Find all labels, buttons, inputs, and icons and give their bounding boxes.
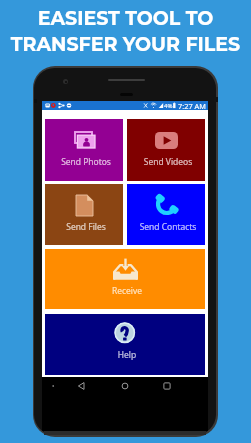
- staticText: Send Contacts: [129, 221, 207, 233]
- staticText: 7:27 AM: [178, 101, 206, 110]
- staticText: TRANSFER YOUR FILES: [0, 33, 251, 56]
- button[interactable]: Send Photos: [45, 119, 123, 181]
- button[interactable]: Receive: [45, 249, 205, 309]
- button[interactable]: Recent apps: [160, 379, 174, 393]
- staticText: EASIEST TOOL TO: [0, 7, 251, 30]
- staticText: Send Videos: [129, 156, 207, 168]
- button[interactable]: Send Contacts: [127, 184, 205, 245]
- button[interactable]: Send Files: [45, 184, 123, 245]
- staticText: Send Photos: [47, 156, 125, 168]
- button[interactable]: Home: [118, 379, 132, 393]
- staticText: Help: [47, 349, 207, 361]
- staticText: 4%: [164, 102, 173, 110]
- button[interactable]: Help: [45, 314, 205, 375]
- button[interactable]: Back: [75, 379, 89, 393]
- staticText: Receive: [47, 285, 207, 297]
- staticText: Send Files: [47, 221, 125, 233]
- button[interactable]: Send Videos: [127, 119, 205, 181]
